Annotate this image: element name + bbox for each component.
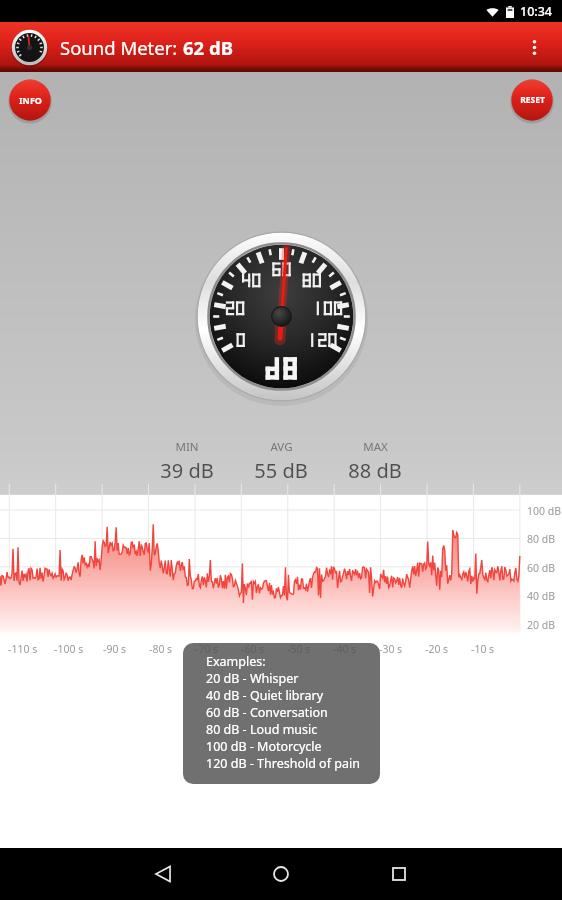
staticText: -30 s <box>379 642 403 656</box>
staticText: 62 dB <box>183 35 233 60</box>
staticText: Sound Meter: <box>60 35 183 60</box>
staticText: MAX <box>363 439 388 455</box>
staticText: 80 dB <box>527 532 556 546</box>
staticText: 100 dB <box>527 504 562 518</box>
staticText: -70 s <box>195 642 219 656</box>
staticText: 20 dB - Whisper <box>206 670 299 687</box>
staticText: -80 s <box>149 642 173 656</box>
staticText: INFO <box>19 94 42 106</box>
button[interactable]: RESET <box>510 78 554 122</box>
staticText: -50 s <box>287 642 311 656</box>
staticText: 80 dB - Loud music <box>206 721 318 738</box>
staticText: RESET <box>520 94 545 106</box>
button[interactable]: Examples: <box>183 643 380 784</box>
button[interactable]: Home <box>245 848 317 900</box>
button[interactable]: More options <box>512 25 556 69</box>
staticText: 60 dB <box>527 561 556 575</box>
staticText: 120 dB - Threshold of pain <box>206 755 360 772</box>
staticText: 60 dB - Conversation <box>206 704 328 721</box>
staticText: MIN <box>175 439 199 455</box>
staticText: -90 s <box>103 642 127 656</box>
staticText: -60 s <box>241 642 265 656</box>
staticText: 100 dB - Motorcycle <box>206 738 322 755</box>
staticText: -100 s <box>54 642 84 656</box>
staticText: 39 dB <box>160 457 214 484</box>
staticText: -20 s <box>425 642 449 656</box>
staticText: 88 dB <box>348 457 402 484</box>
staticText: -110 s <box>8 642 38 656</box>
staticText: Examples: <box>206 653 266 670</box>
staticText: -10 s <box>471 642 495 656</box>
button[interactable]: Back <box>127 848 199 900</box>
staticText: 10:34 <box>520 3 553 20</box>
staticText: 55 dB <box>254 457 308 484</box>
staticText: AVG <box>270 439 293 455</box>
button[interactable]: Recent apps <box>363 848 435 900</box>
staticText: 40 dB - Quiet library <box>206 687 324 704</box>
button[interactable]: INFO <box>8 78 52 122</box>
staticText: 20 dB <box>527 618 556 632</box>
staticText: 40 dB <box>527 589 556 603</box>
staticText: -40 s <box>333 642 357 656</box>
